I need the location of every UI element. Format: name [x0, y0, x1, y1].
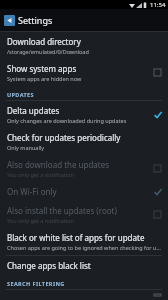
button[interactable]: Navigate up — [0, 12, 18, 29]
button[interactable]: Also install the updates (root) — [0, 201, 168, 228]
staticText: On Wi-Fi only — [7, 186, 57, 197]
button[interactable]: Hide paid apps — [0, 290, 168, 300]
button[interactable]: Show system apps — [0, 59, 168, 86]
staticText: Change apps black list — [7, 260, 91, 271]
staticText: Check for updates periodically — [7, 132, 121, 143]
staticText: Only changes are downloaded during updat… — [7, 117, 127, 124]
staticText: You only get a notification — [7, 171, 75, 178]
staticText: System apps are hidden now — [7, 75, 82, 82]
staticText: UPDATES — [7, 91, 34, 98]
staticText: 11:54 — [150, 1, 166, 9]
staticText: Black or white list of apps for update — [7, 232, 145, 243]
staticText: Also download the updates — [7, 159, 110, 170]
staticText: /storage/emulated/0/Download — [7, 48, 89, 55]
staticText: You only get a notification — [7, 217, 75, 224]
button[interactable]: Download directory — [0, 32, 168, 59]
button[interactable]: Change apps black list — [0, 256, 168, 275]
button[interactable]: Also download the updates — [0, 155, 168, 182]
staticText: Show system apps — [7, 63, 77, 74]
staticText: Settings — [18, 14, 53, 26]
staticText: Chosen apps are going to be ignored when… — [7, 244, 162, 251]
staticText: Only manually — [7, 144, 45, 151]
button[interactable]: Delta updates — [0, 101, 168, 128]
staticText: SEARCH FILTERING — [7, 280, 65, 287]
staticText: Also install the updates (root) — [7, 205, 117, 216]
staticText: Download directory — [7, 36, 81, 47]
button[interactable]: On Wi-Fi only — [0, 182, 168, 201]
button[interactable]: Black or white list of apps for update — [0, 228, 168, 255]
button[interactable]: Check for updates periodically — [0, 128, 168, 155]
staticText: Delta updates — [7, 105, 60, 116]
